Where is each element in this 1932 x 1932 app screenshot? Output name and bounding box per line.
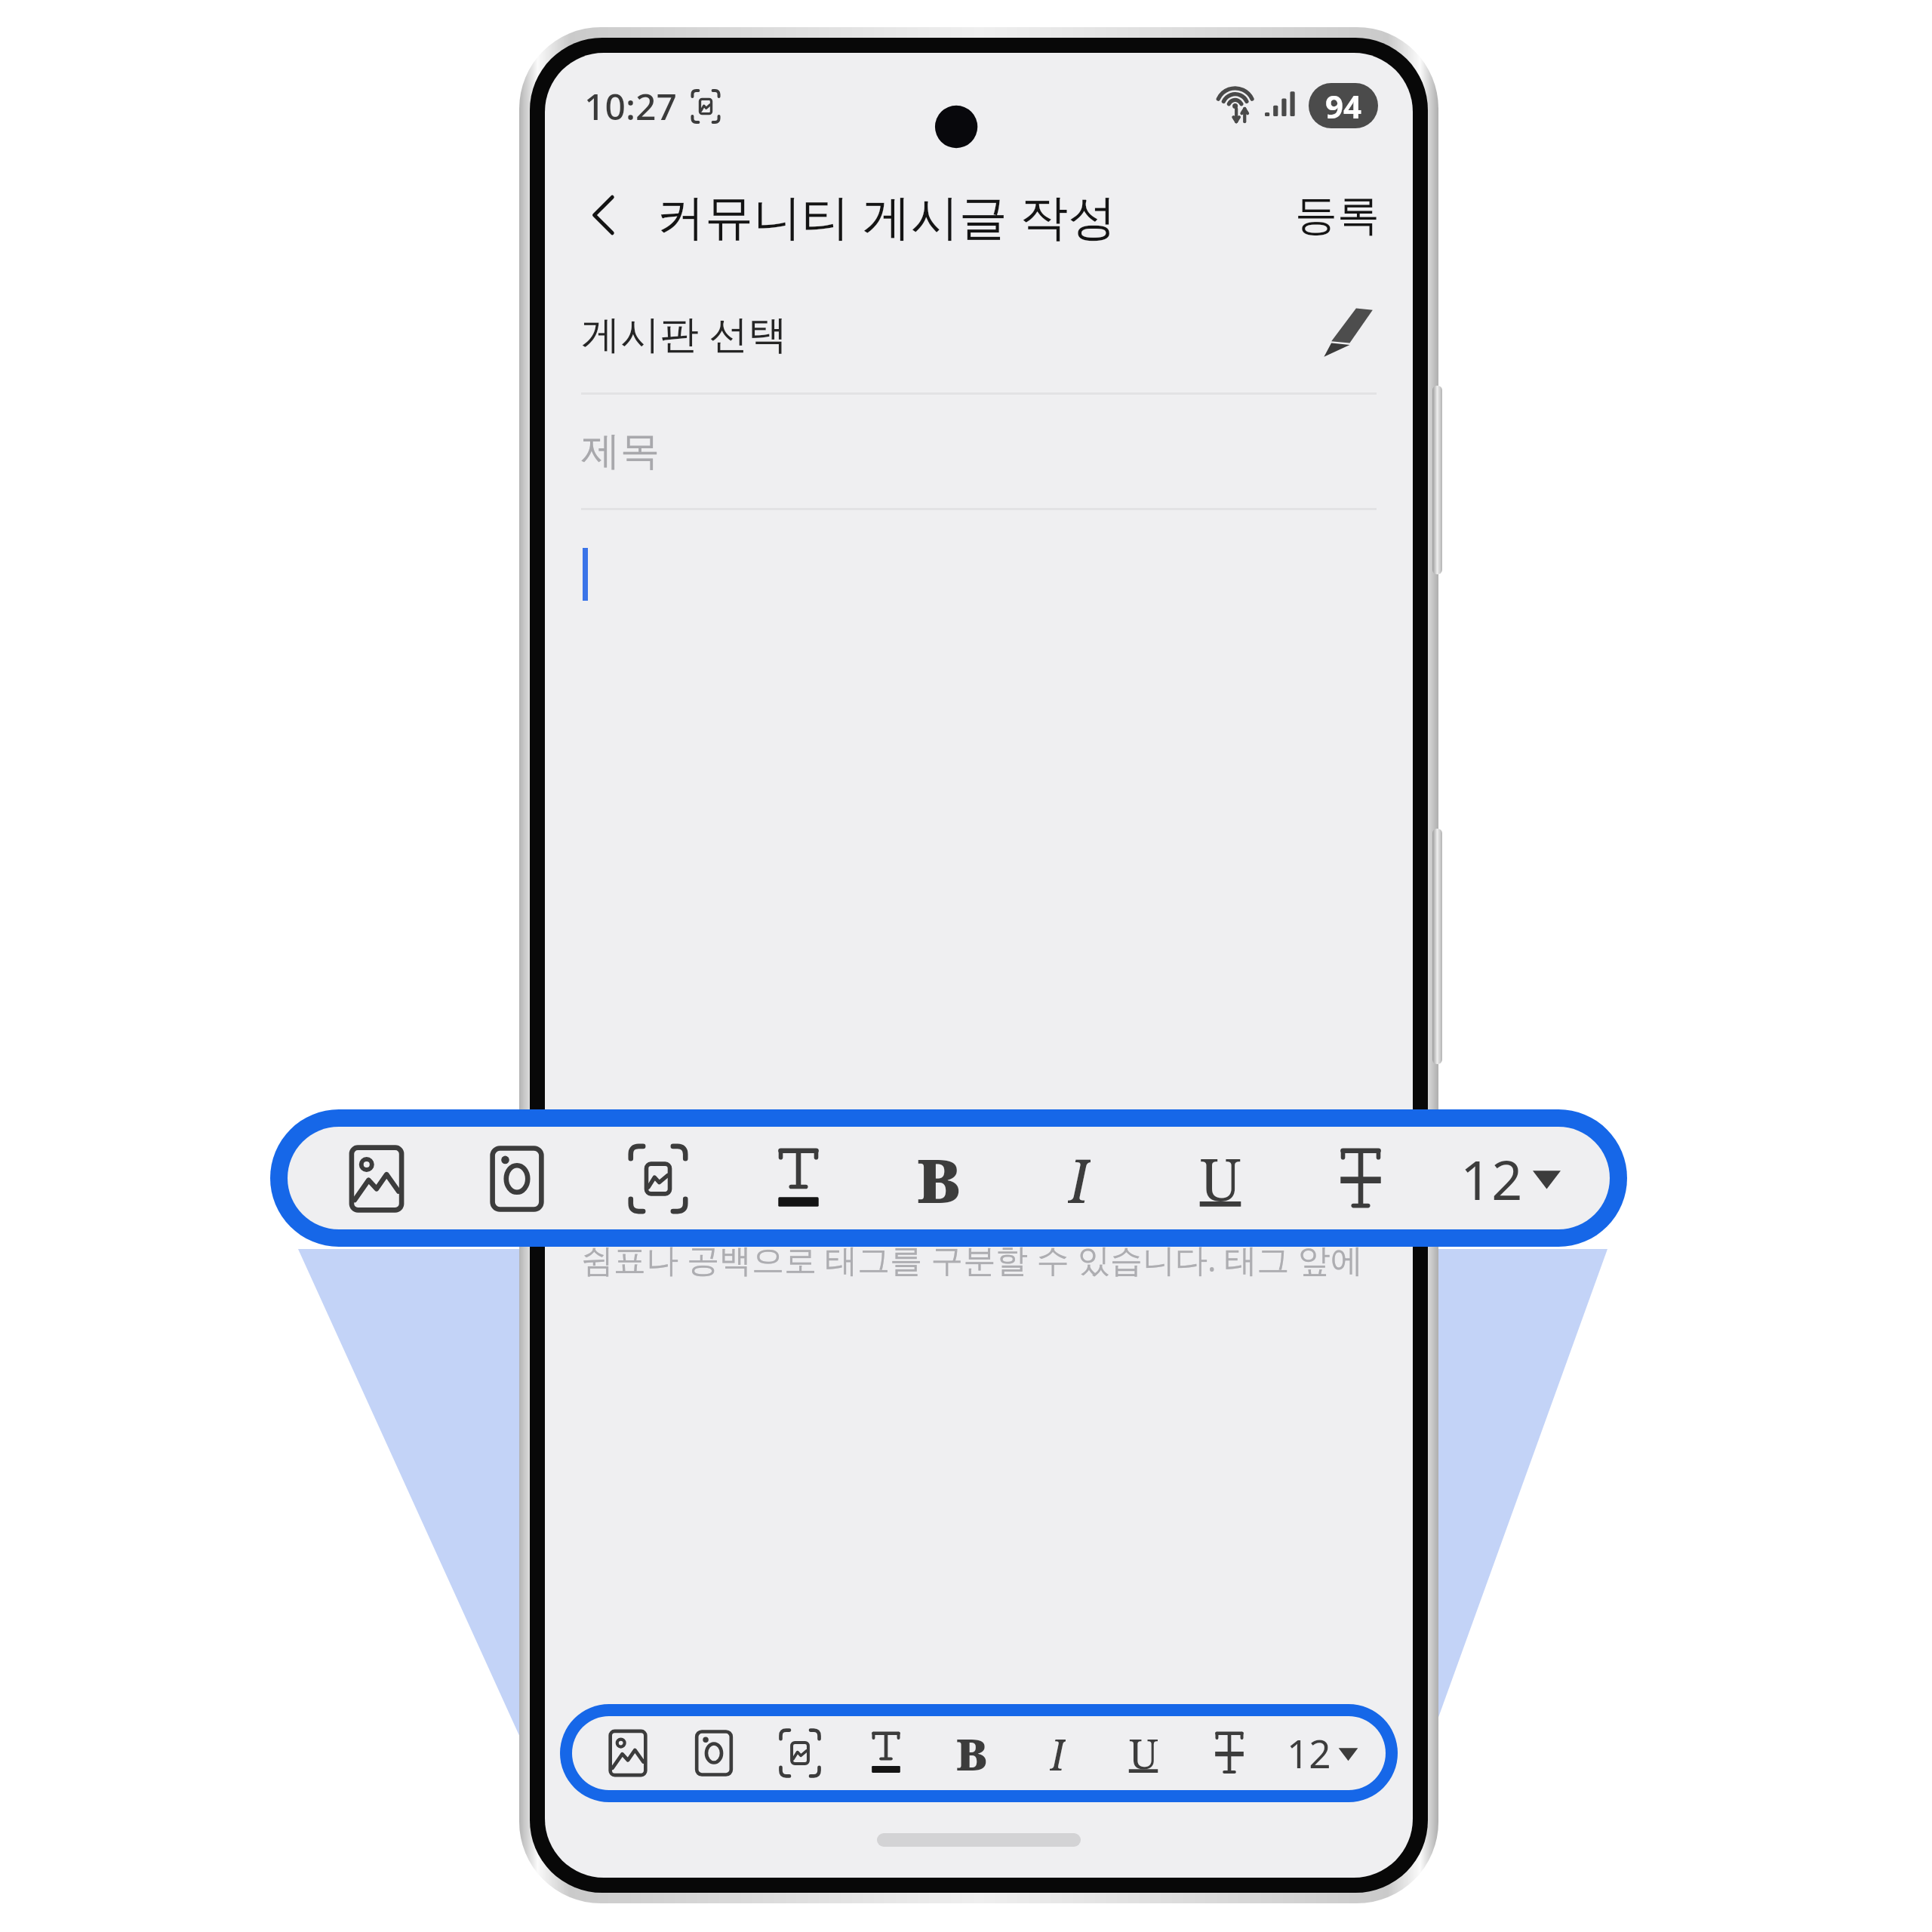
staticText: U [1200,1140,1241,1218]
staticText: 등록 [1295,189,1380,242]
button[interactable]: Italic [1038,1138,1119,1219]
button[interactable]: 게시판 선택 [545,272,1413,392]
button[interactable]: 태그 [545,1131,1413,1221]
button[interactable]: Insert image [336,1138,417,1219]
button[interactable]: Camera [685,1724,743,1782]
staticText: 12 [1460,1142,1523,1216]
button[interactable]: Text colour [758,1138,838,1219]
button[interactable] [545,510,1413,1131]
staticText: 12 [1287,1727,1331,1780]
staticText: B [956,1724,988,1782]
button[interactable]: 등록 [1281,177,1393,254]
button[interactable]: Font size 12 [1287,1724,1358,1782]
staticText: B [917,1138,961,1219]
staticText: 태그 [581,1153,654,1198]
staticText: 10:27 [584,82,677,131]
button[interactable]: Strikethrough [1201,1724,1258,1782]
staticText: U [1129,1725,1158,1781]
button[interactable]: Strikethrough [1320,1138,1401,1219]
button[interactable]: Underline [1115,1724,1172,1782]
staticText: 94 [1325,85,1362,128]
staticText: 쉼표나 공백으로 태그를 구분할 수 있습니다. 태그 앞에 # 표시를 넣는 … [581,1237,1377,1281]
button[interactable]: Bold [943,1724,1001,1782]
button[interactable]: Underline [1180,1138,1260,1219]
button[interactable]: Bold [898,1138,979,1219]
button[interactable]: Italic [1029,1724,1086,1782]
button[interactable]: Camera [476,1138,557,1219]
button[interactable]: Back [569,179,641,251]
staticText: 커뮤니티 게시글 작성 [657,183,1117,248]
staticText: I [1068,1138,1091,1219]
button[interactable]: Text colour [857,1724,915,1782]
button[interactable]: 제목 [545,395,1413,508]
button[interactable]: Scan image [617,1138,698,1219]
button[interactable]: Scan image [771,1724,829,1782]
button[interactable]: Font size 12 [1460,1138,1561,1219]
staticText: I [1050,1724,1066,1782]
button[interactable]: Insert image [599,1724,657,1782]
staticText: 게시판 선택 [581,306,788,359]
staticText: 제목 [581,426,660,476]
